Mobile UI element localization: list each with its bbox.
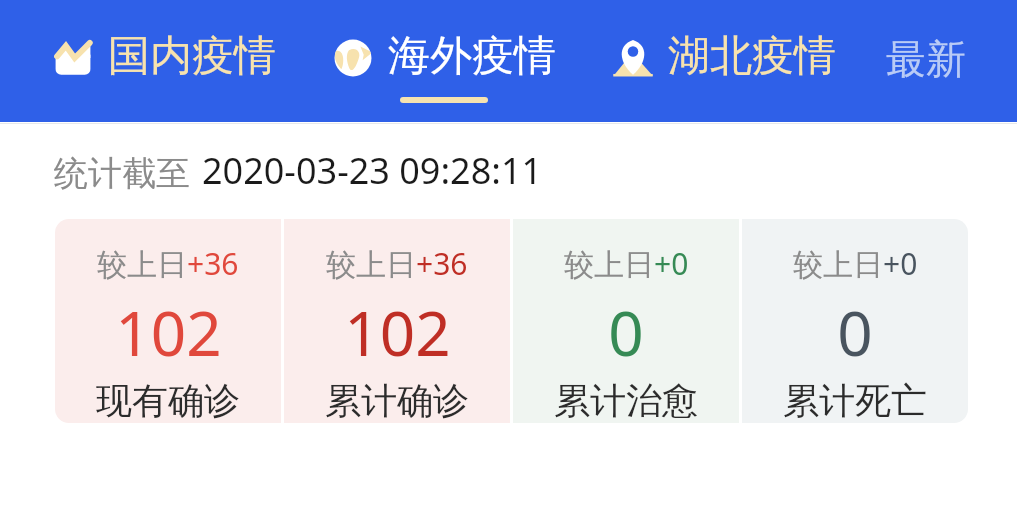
button[interactable]: 较上日+36 — [55, 219, 281, 423]
other: 海外疫情 globe — [332, 37, 374, 79]
staticText: 较上日+0 — [564, 243, 689, 284]
other: 湖北疫情 location — [612, 37, 654, 79]
staticText: 湖北疫情 — [668, 30, 836, 83]
button[interactable]: 海外疫情 globe — [332, 0, 556, 122]
staticText: 较上日+36 — [326, 243, 468, 284]
staticText: 累计治愈 — [554, 378, 698, 423]
button[interactable]: 国内疫情 chart — [52, 0, 276, 122]
staticText: 102 — [115, 290, 222, 374]
staticText: 累计确诊 — [325, 378, 469, 423]
staticText: 102 — [344, 290, 451, 374]
staticText: 海外疫情 — [388, 30, 556, 83]
staticText: 统计截至 — [54, 152, 190, 195]
staticText: 0 — [837, 290, 873, 374]
staticText: 国内疫情 — [108, 30, 276, 83]
staticText: 较上日+36 — [97, 243, 239, 284]
button[interactable]: 较上日+0 — [742, 219, 968, 423]
staticText: 0 — [608, 290, 644, 374]
button[interactable]: 较上日+36 — [284, 219, 510, 423]
staticText: 最新 — [886, 34, 966, 84]
staticText: 现有确诊 — [96, 378, 240, 423]
button[interactable]: 较上日+0 — [513, 219, 739, 423]
button[interactable]: 湖北疫情 location — [612, 0, 836, 122]
other: 国内疫情 chart — [52, 37, 94, 79]
staticText: 累计死亡 — [783, 378, 927, 423]
button[interactable]: 最新 — [886, 0, 966, 122]
staticText: 较上日+0 — [793, 243, 918, 284]
staticText: 2020-03-23 09:28:11 — [202, 146, 543, 195]
